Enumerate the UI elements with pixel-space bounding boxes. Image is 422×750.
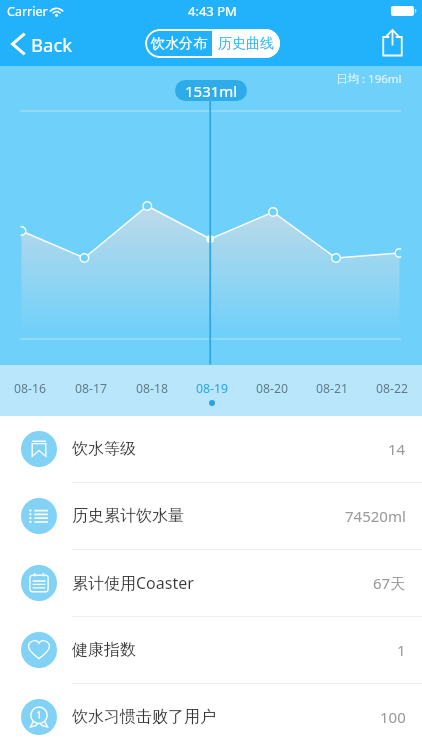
- staticText: 08-20: [256, 380, 289, 397]
- staticText: 饮水等级: [72, 439, 136, 459]
- staticText: 累计使用Coaster: [72, 572, 194, 594]
- button[interactable]: 历史累计饮水量: [0, 483, 422, 550]
- staticText: 08-17: [75, 380, 108, 397]
- staticText: 1531ml: [185, 81, 238, 101]
- button[interactable]: 健康指数: [0, 617, 422, 684]
- button[interactable]: 饮水分布: [145, 29, 212, 58]
- staticText: 饮水习惯击败了用户: [72, 707, 216, 727]
- staticText: 4:43 PM: [188, 2, 237, 20]
- staticText: 08-19: [196, 380, 229, 397]
- staticText: Back: [31, 32, 73, 57]
- staticText: 健康指数: [72, 640, 136, 660]
- button[interactable]: Back: [0, 22, 83, 66]
- staticText: 历史累计饮水量: [72, 506, 184, 526]
- button[interactable]: Share: [370, 22, 422, 66]
- staticText: 08-22: [376, 380, 409, 397]
- staticText: 历史曲线: [218, 35, 274, 53]
- button[interactable]: 饮水等级: [0, 416, 422, 483]
- staticText: 日均 : 196ml: [336, 71, 402, 87]
- staticText: 100: [380, 707, 406, 727]
- staticText: 74520ml: [345, 506, 406, 526]
- staticText: 08-21: [316, 380, 349, 397]
- staticText: 饮水分布: [151, 35, 207, 53]
- button[interactable]: 饮水习惯击败了用户: [0, 684, 422, 750]
- staticText: 14: [388, 439, 406, 459]
- staticText: 1: [397, 640, 406, 660]
- staticText: 08-18: [136, 380, 169, 397]
- staticText: Carrier: [7, 3, 48, 20]
- button[interactable]: 历史曲线: [212, 29, 280, 58]
- staticText: 08-16: [14, 380, 47, 397]
- staticText: 67天: [373, 573, 406, 593]
- button[interactable]: 累计使用Coaster: [0, 550, 422, 617]
